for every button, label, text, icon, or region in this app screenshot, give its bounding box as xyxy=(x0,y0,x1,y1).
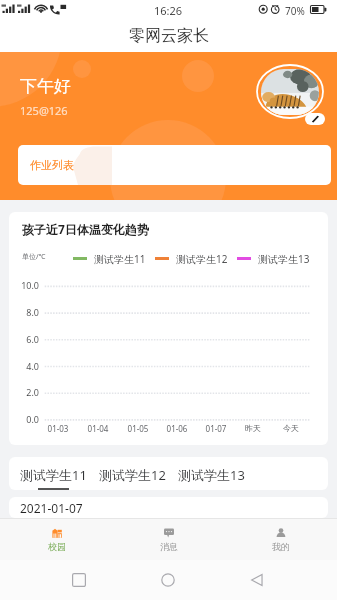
staticText: 昨天 xyxy=(233,423,273,433)
staticText: 测试学生11 xyxy=(20,466,87,484)
button[interactable]: Profile avatar xyxy=(256,64,324,119)
staticText: 校园 xyxy=(48,541,66,552)
staticText: 消息 xyxy=(160,541,178,552)
button[interactable]: Home xyxy=(161,573,175,587)
staticText: 01-03 xyxy=(38,423,78,434)
staticText: 2021-01-07 xyxy=(20,500,83,516)
staticText: 6.0 xyxy=(9,333,39,345)
staticText: 125@126 xyxy=(20,103,68,118)
button[interactable]: 消息 xyxy=(113,519,225,560)
button[interactable]: Back xyxy=(250,573,264,587)
staticText: 单位/℃ xyxy=(22,252,46,262)
button[interactable]: Recent apps xyxy=(72,573,86,587)
staticText: 孩子近7日体温变化趋势 xyxy=(22,221,149,237)
staticText: 零网云家长 xyxy=(129,26,209,46)
button[interactable]: 测试学生13 xyxy=(178,457,245,490)
button[interactable]: 我的 xyxy=(225,519,337,560)
button[interactable]: 作业列表 xyxy=(18,145,331,185)
button[interactable]: Edit profile xyxy=(305,113,325,125)
staticText: 今天 xyxy=(271,423,311,433)
staticText: 测试学生13 xyxy=(178,466,245,484)
staticText: 01-04 xyxy=(78,423,118,434)
staticText: 测试学生12 xyxy=(99,466,166,484)
staticText: 70% xyxy=(285,4,305,18)
staticText: 2.0 xyxy=(9,386,39,398)
staticText: 0.0 xyxy=(9,413,39,425)
staticText: 01-05 xyxy=(118,423,158,434)
staticText: 01-07 xyxy=(196,423,236,434)
staticText: 10.0 xyxy=(9,279,39,291)
staticText: 8.0 xyxy=(9,306,39,318)
staticText: 01-06 xyxy=(157,423,197,434)
staticText: 作业列表 xyxy=(30,158,74,172)
button[interactable]: 测试学生12 xyxy=(99,457,166,490)
staticText: 测试学生13 xyxy=(258,252,310,266)
staticText: 16:26 xyxy=(154,3,183,18)
staticText: 测试学生11 xyxy=(94,252,146,266)
staticText: 4.0 xyxy=(9,360,39,372)
staticText: 测试学生12 xyxy=(176,252,228,266)
button[interactable]: 校园 xyxy=(0,519,113,560)
staticText: 下午好 xyxy=(20,76,71,97)
staticText: 我的 xyxy=(272,541,290,552)
button[interactable]: 测试学生11 xyxy=(20,457,87,490)
